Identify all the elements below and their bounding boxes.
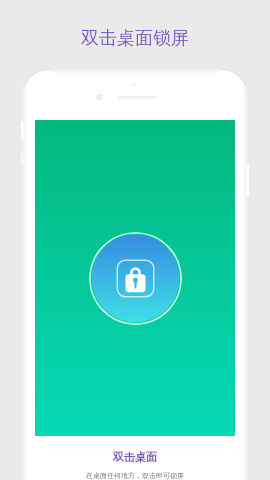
staticText: 双击桌面 (113, 450, 157, 464)
staticText: 在桌面任何地方，双击即可锁屏 (86, 471, 184, 480)
button[interactable]: Lock the screen (89, 232, 182, 325)
staticText: 双击桌面锁屏 (81, 27, 189, 50)
